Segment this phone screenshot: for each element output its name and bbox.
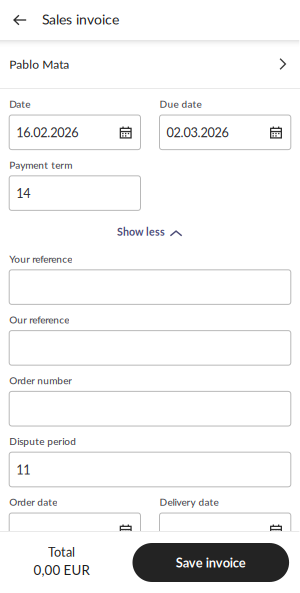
staticText: Order number bbox=[9, 374, 72, 386]
button[interactable]: Pablo Mata bbox=[0, 40, 300, 88]
staticText: Pablo Mata bbox=[9, 57, 69, 71]
staticText: 02.03.2026 bbox=[166, 125, 228, 140]
staticText: Delivery date bbox=[159, 496, 218, 508]
staticText: Due date bbox=[159, 98, 201, 110]
staticText: Order date bbox=[9, 496, 57, 508]
staticText: 16.02.2026 bbox=[16, 125, 78, 140]
staticText: Date bbox=[9, 98, 30, 110]
staticText: Your reference bbox=[9, 253, 72, 265]
staticText: Total bbox=[48, 544, 75, 559]
staticText: Show less bbox=[117, 225, 165, 238]
staticText: Sales invoice bbox=[42, 11, 119, 27]
staticText: 11 bbox=[16, 462, 30, 477]
staticText: Payment term bbox=[9, 159, 72, 171]
button[interactable]: Show less bbox=[9, 220, 290, 244]
button[interactable]: Save invoice bbox=[132, 543, 289, 582]
staticText: Save invoice bbox=[176, 555, 246, 570]
staticText: 0,00 EUR bbox=[33, 562, 89, 578]
staticText: Our reference bbox=[9, 314, 69, 326]
button[interactable]: Back bbox=[0, 0, 41, 40]
staticText: 14 bbox=[16, 185, 30, 201]
staticText: Dispute period bbox=[9, 435, 76, 447]
